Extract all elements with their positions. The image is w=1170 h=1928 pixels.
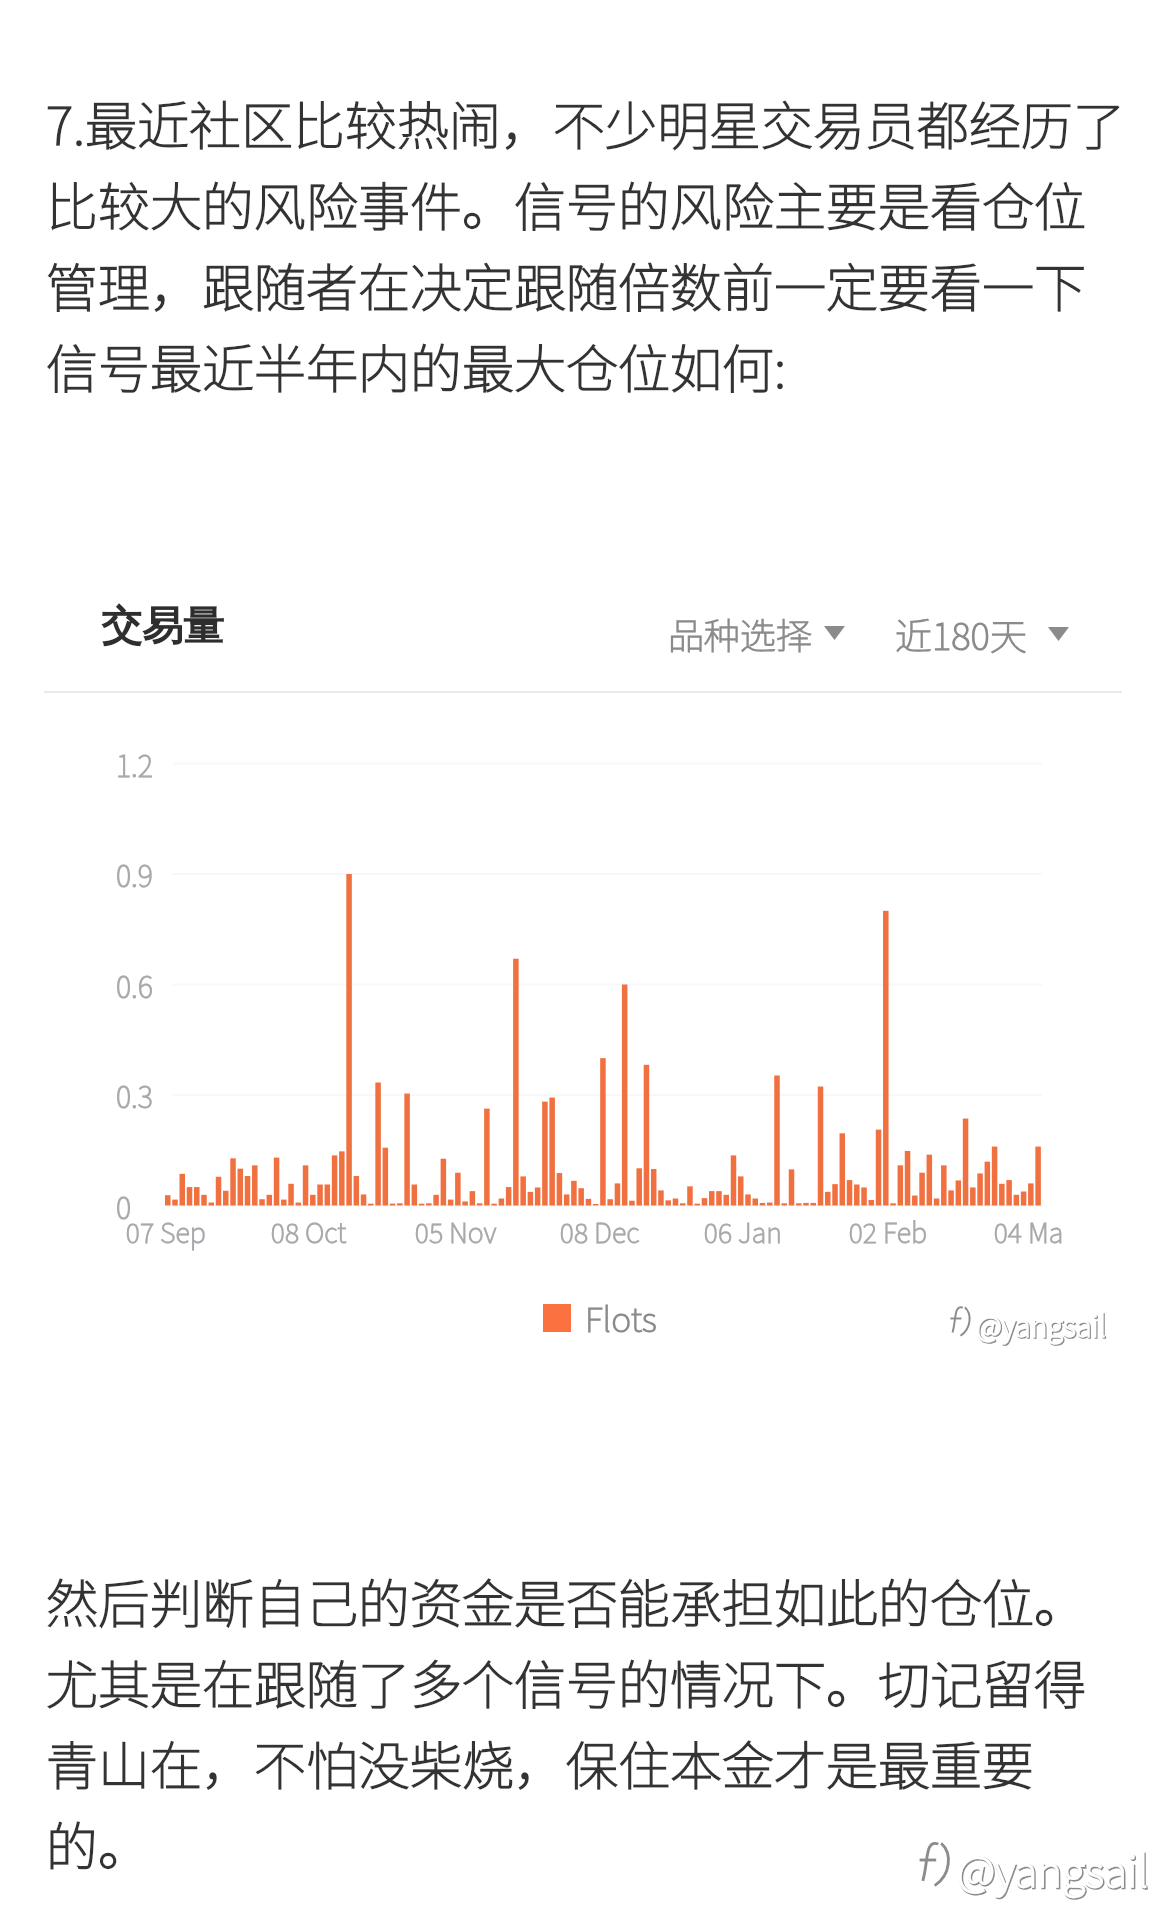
staticText: @yangsail bbox=[976, 1303, 1107, 1345]
staticText: 08 Dec bbox=[560, 1212, 640, 1251]
staticText: 0.6 bbox=[116, 964, 153, 1006]
staticText: 02 Feb bbox=[849, 1212, 928, 1251]
staticText: 1.2 bbox=[116, 743, 153, 785]
button[interactable]: 近180天 bbox=[895, 607, 1069, 661]
staticText: 07 Sep bbox=[126, 1212, 206, 1251]
other: Watermark @yangsail bbox=[916, 1838, 1108, 1900]
staticText: 交易量 bbox=[101, 601, 224, 653]
staticText: 06 Jan bbox=[704, 1212, 782, 1251]
staticText: 然后判断自己的资金是否能承担如此的仓位。 尤其是在跟随了多个信号的情况下。切记留… bbox=[46, 1563, 1170, 1881]
staticText: 品种选择 bbox=[668, 607, 813, 659]
staticText: 0.9 bbox=[116, 853, 153, 895]
other: Watermark @yangsail bbox=[948, 1304, 1079, 1346]
button[interactable]: 品种选择 bbox=[668, 607, 845, 659]
staticText: 0.3 bbox=[116, 1074, 153, 1116]
staticText: 08 Oct bbox=[271, 1212, 347, 1251]
staticText: 0 bbox=[116, 1185, 132, 1227]
staticText: 04 Ma bbox=[994, 1212, 1064, 1251]
staticText: 7.最近社区比较热闹，不少明星交易员都经历了 比较大的风险事件。信号的风险主要是… bbox=[46, 85, 1170, 403]
staticText: @yangsail bbox=[977, 1304, 1108, 1346]
staticText: @yangsail bbox=[957, 1837, 1149, 1899]
staticText: 近180天 bbox=[895, 607, 1027, 661]
staticText: @yangsail bbox=[958, 1838, 1150, 1900]
staticText: Flots bbox=[585, 1293, 657, 1342]
staticText: 05 Nov bbox=[415, 1212, 497, 1251]
